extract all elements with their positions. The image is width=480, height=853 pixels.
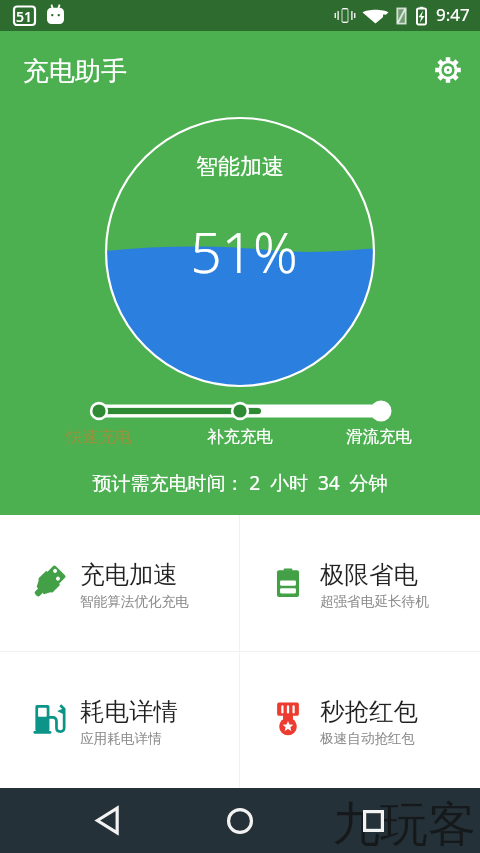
staticText: 超强省电延长待机 bbox=[320, 593, 429, 610]
staticText: 秒抢红包 bbox=[320, 696, 418, 727]
staticText: 快速充电 bbox=[66, 426, 132, 447]
staticText: 极速自动抢红包 bbox=[320, 730, 416, 747]
staticText: 智能加速 bbox=[0, 153, 480, 181]
staticText: 51% bbox=[4, 214, 480, 289]
staticText: 9:47 bbox=[436, 3, 470, 26]
staticText: 预计需充电时间： 2 小时 34 分钟 bbox=[0, 470, 480, 496]
staticText: 滑流充电 bbox=[346, 426, 412, 447]
button[interactable]: Settings bbox=[427, 49, 469, 91]
staticText: 充电加速 bbox=[80, 559, 178, 590]
staticText: 51 bbox=[16, 7, 33, 26]
button[interactable]: Home bbox=[207, 788, 273, 853]
button[interactable]: 秒抢红包 bbox=[240, 652, 480, 788]
button[interactable]: 补充充电 bbox=[174, 426, 306, 447]
button[interactable]: 耗电详情 bbox=[0, 652, 239, 788]
button[interactable]: Back bbox=[74, 788, 140, 853]
button[interactable]: 快速充电 bbox=[33, 426, 165, 447]
button[interactable]: 滑流充电 bbox=[313, 426, 445, 447]
button[interactable]: Recents bbox=[340, 788, 406, 853]
staticText: 应用耗电详情 bbox=[80, 730, 162, 747]
button[interactable]: 充电加速 bbox=[0, 515, 239, 651]
staticText: 九玩客 bbox=[332, 795, 476, 853]
staticText: 充电助手 bbox=[23, 55, 127, 88]
staticText: 耗电详情 bbox=[80, 696, 178, 727]
staticText: 智能算法优化充电 bbox=[80, 593, 189, 610]
staticText: 极限省电 bbox=[320, 559, 418, 590]
staticText: 补充充电 bbox=[207, 426, 273, 447]
button[interactable]: 极限省电 bbox=[240, 515, 480, 651]
